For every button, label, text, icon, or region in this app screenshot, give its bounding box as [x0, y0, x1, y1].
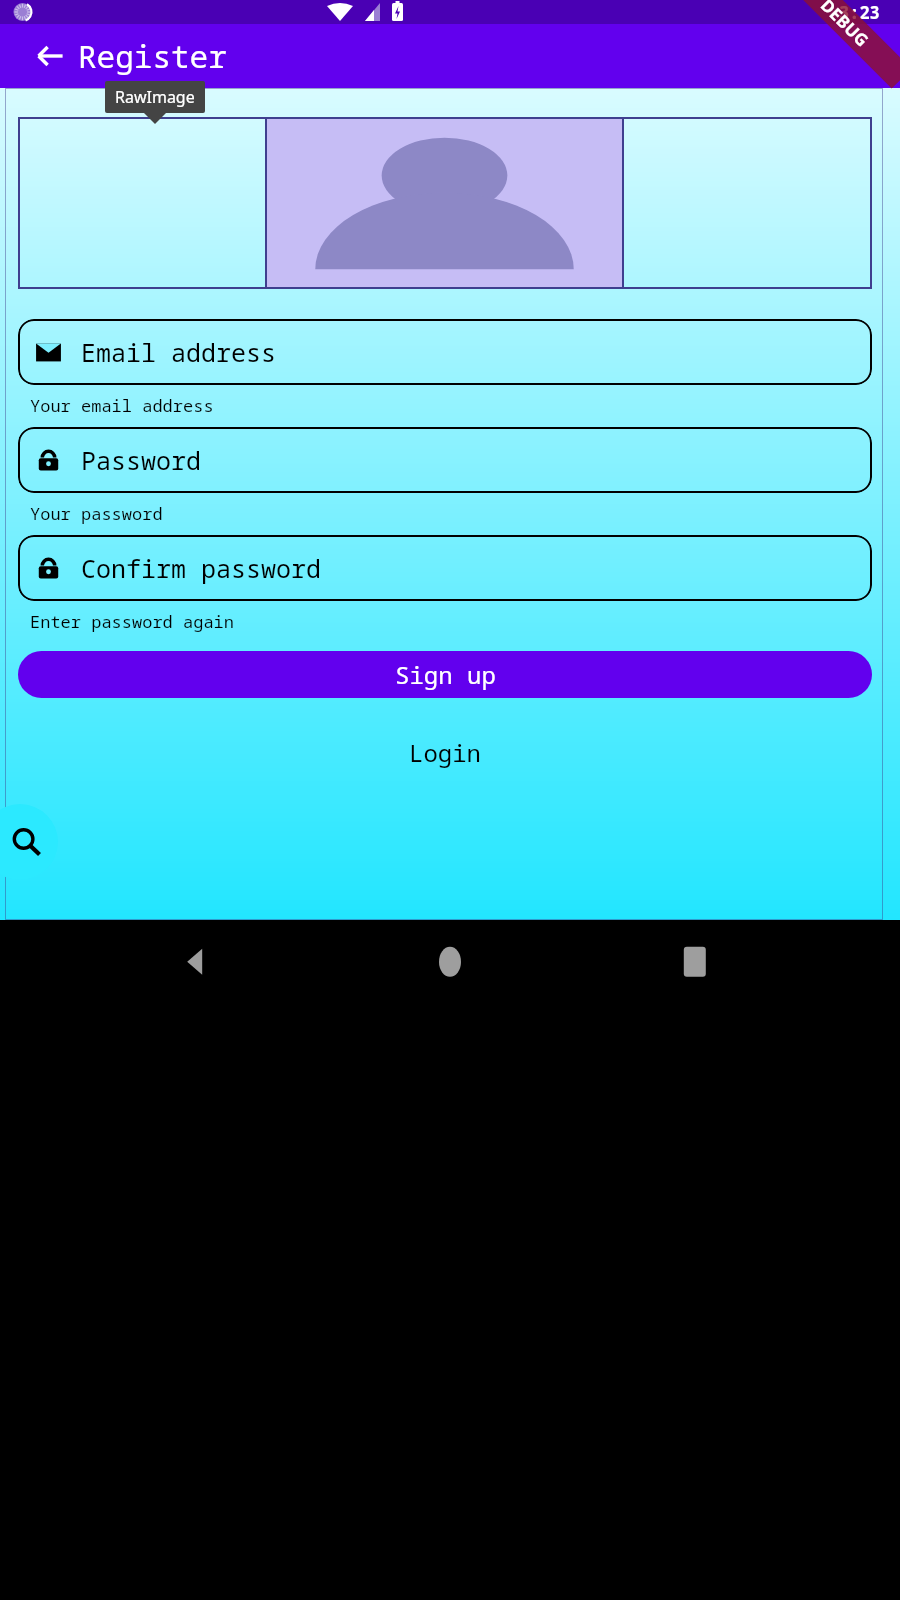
button[interactable]: Back [26, 32, 74, 80]
staticText: RawImage [115, 86, 195, 108]
staticText: 3:23 [839, 1, 880, 24]
button[interactable]: Confirm password [18, 535, 872, 601]
staticText: Sign up [395, 658, 496, 691]
button[interactable]: Email address [18, 319, 872, 385]
staticText: Enter password again [30, 610, 234, 633]
staticText: DEBUG [816, 0, 874, 52]
button[interactable]: Sign up [18, 651, 872, 698]
staticText: Confirm password [81, 551, 322, 585]
button[interactable]: Password [18, 427, 872, 493]
staticText: Register [78, 35, 227, 77]
staticText: Your email address [30, 394, 214, 417]
staticText: Password [81, 443, 202, 477]
staticText: Your password [30, 502, 163, 525]
staticText: Email address [81, 335, 277, 369]
button[interactable]: Search [0, 804, 58, 880]
button[interactable]: Login [409, 736, 481, 769]
